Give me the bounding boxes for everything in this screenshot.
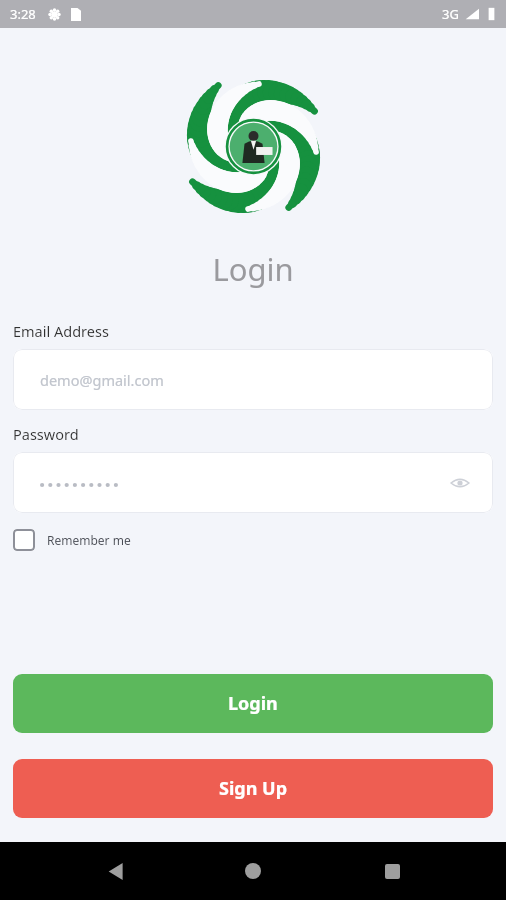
staticText: 3G	[442, 5, 459, 23]
button[interactable]: Show password	[13, 452, 493, 513]
staticText: Password	[13, 424, 79, 444]
button[interactable]: Remember me	[13, 529, 131, 551]
button[interactable]: Login	[13, 674, 493, 733]
staticText: demo@gmail.com	[40, 370, 164, 390]
button[interactable]: demo@gmail.com	[13, 349, 493, 410]
staticText: Email Address	[13, 321, 109, 341]
staticText: Sign Up	[219, 776, 288, 801]
button[interactable]: Show password	[445, 468, 475, 498]
staticText: Remember me	[47, 532, 131, 548]
button[interactable]: Recent apps	[368, 847, 416, 895]
button[interactable]: Back	[91, 847, 139, 895]
staticText: 3:28	[10, 5, 36, 23]
staticText: Login	[212, 248, 294, 290]
button[interactable]: Home	[229, 847, 277, 895]
staticText: Login	[228, 691, 278, 716]
button[interactable]: Sign Up	[13, 759, 493, 818]
